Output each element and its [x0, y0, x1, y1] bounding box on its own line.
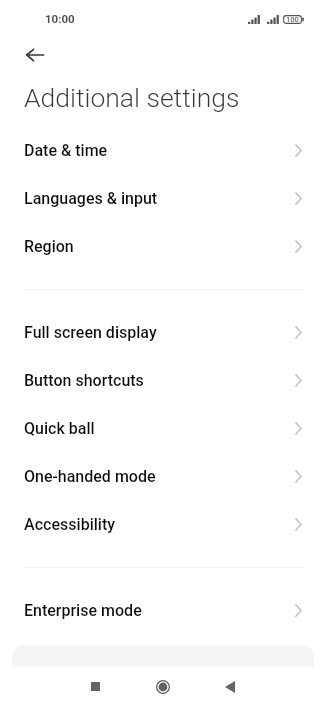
staticText: Quick ball — [24, 419, 95, 438]
staticText: Languages & input — [24, 189, 158, 208]
button[interactable]: Recents — [75, 667, 115, 706]
button[interactable]: Home — [143, 667, 183, 706]
staticText: Accessibility — [24, 515, 116, 534]
button[interactable]: Region — [0, 222, 326, 270]
staticText: Enterprise mode — [24, 601, 142, 620]
button[interactable]: Back — [210, 667, 250, 706]
staticText: 10:00 — [45, 12, 75, 25]
staticText: 100 — [286, 15, 299, 24]
button[interactable]: Languages & input — [0, 174, 326, 222]
staticText: One-handed mode — [24, 467, 156, 486]
button[interactable]: Date & time — [0, 126, 326, 174]
staticText: Full screen display — [24, 323, 157, 342]
staticText: Region — [24, 237, 74, 256]
staticText: Button shortcuts — [24, 371, 144, 390]
button[interactable]: Back — [11, 38, 59, 72]
button[interactable]: One-handed mode — [0, 452, 326, 500]
button[interactable]: Quick ball — [0, 404, 326, 452]
button[interactable]: Enterprise mode — [0, 586, 326, 634]
button[interactable]: Accessibility — [0, 500, 326, 548]
staticText: Additional settings — [24, 82, 240, 113]
button[interactable]: Button shortcuts — [0, 356, 326, 404]
button[interactable]: Full screen display — [0, 308, 326, 356]
staticText: Date & time — [24, 141, 108, 160]
